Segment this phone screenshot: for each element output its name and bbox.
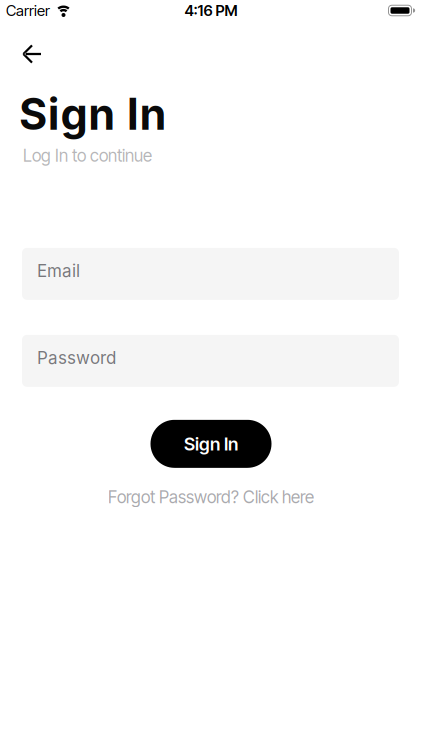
button[interactable]: Forgot Password? Click here (108, 487, 314, 507)
staticText: Email (37, 261, 80, 281)
staticText: Carrier (6, 1, 50, 19)
staticText: Forgot Password? Click here (108, 487, 314, 507)
button[interactable]: Email (0, 248, 422, 300)
staticText: Password (37, 348, 116, 368)
staticText: Log In to continue (23, 145, 152, 166)
button[interactable]: Sign In (150, 420, 271, 468)
staticText: Sign In (19, 88, 166, 140)
staticText: 4:16 PM (184, 1, 237, 19)
button[interactable]: Password (0, 335, 422, 387)
staticText: Sign In (184, 433, 238, 455)
button[interactable] (0, 21, 42, 63)
